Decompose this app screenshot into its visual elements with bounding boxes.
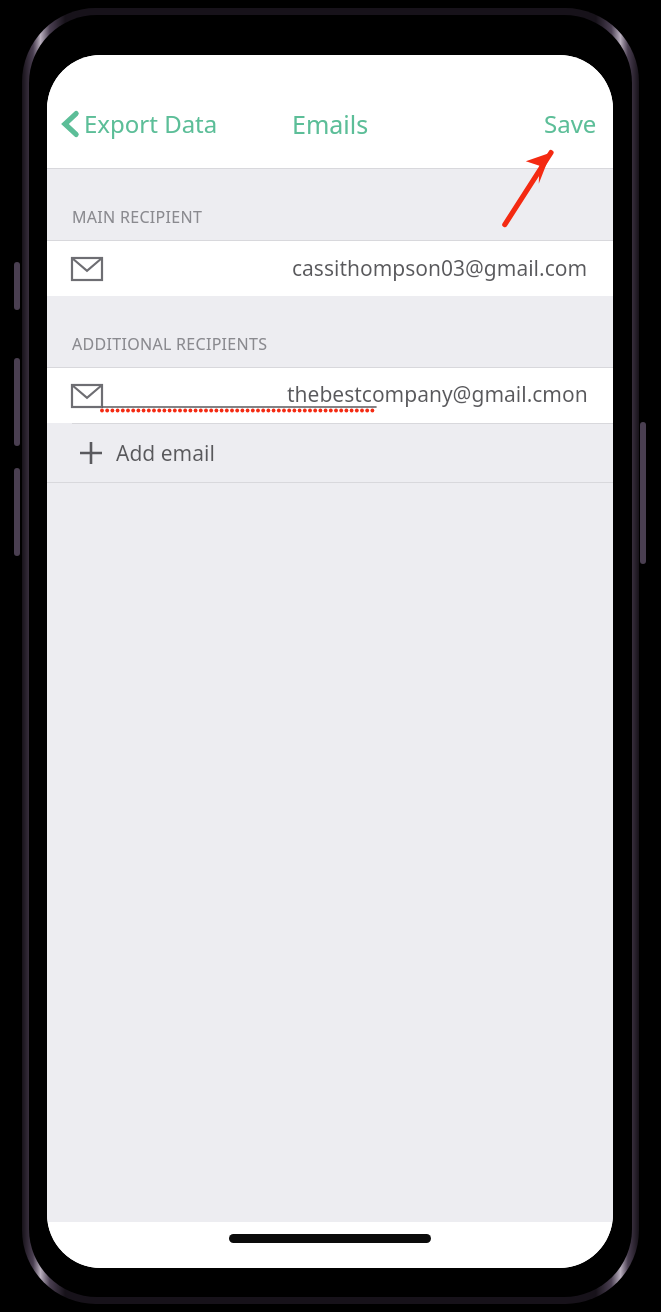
- staticText: MAIN RECIPIENT: [72, 206, 203, 228]
- staticText: ADDITIONAL RECIPIENTS: [72, 333, 268, 355]
- staticText: Export Data: [84, 107, 218, 140]
- other: Add email: [80, 442, 102, 464]
- staticText: Save: [544, 107, 597, 140]
- button[interactable]: Export Data: [47, 101, 228, 146]
- staticText: cassithompson03@gmail.com: [292, 254, 588, 283]
- button[interactable]: Add email: [47, 424, 613, 482]
- button[interactable]: Save: [528, 99, 613, 148]
- button[interactable]: thebestcompany@gmail.cmon: [47, 368, 613, 423]
- staticText: Add email: [116, 439, 215, 468]
- staticText: Emails: [292, 107, 369, 141]
- button[interactable]: cassithompson03@gmail.com: [47, 241, 613, 296]
- staticText: thebestcompany@gmail.cmon: [287, 380, 588, 409]
